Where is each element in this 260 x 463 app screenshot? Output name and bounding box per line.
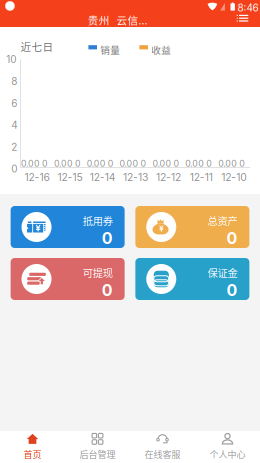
staticText: 云信... [116,12,147,27]
staticText: 0 [206,158,212,169]
staticText: 0.00 [54,158,73,169]
button[interactable]: 首页 [0,431,65,463]
staticText: 12-10 [221,171,247,184]
button[interactable]: 在线客服 [130,431,195,463]
staticText: 12-15 [57,171,82,184]
staticText: 12-16 [24,171,49,184]
staticText: 0 [102,229,113,248]
staticText: 0 [227,281,238,300]
staticText: 总资产 [208,213,238,228]
staticText: 2 [11,141,17,153]
staticText: 0 [239,158,245,169]
staticText: 0.00 [120,158,139,169]
button[interactable]: 抵用券 [11,206,125,248]
staticText: 0 [75,158,81,169]
staticText: 12-14 [90,171,116,184]
staticText: 个人中心 [209,447,245,461]
staticText: 0 [42,158,48,169]
staticText: 8 [11,75,17,87]
button[interactable]: Menu [232,10,252,26]
staticText: 6 [11,97,17,109]
staticText: 12-13 [123,171,148,184]
staticText: 8:46 [237,2,258,14]
staticText: 近七日 [21,39,54,54]
staticText: 收益 [151,43,171,56]
button[interactable]: 可提现 [11,258,125,300]
staticText: 在线客服 [144,447,180,461]
staticText: 12-12 [156,171,181,184]
button[interactable]: 后台管理 [65,431,130,463]
staticText: 0 [227,229,238,248]
button[interactable]: 保证金 [135,258,249,300]
staticText: 10 [6,53,16,65]
staticText: 0.00 [218,158,237,169]
staticText: 保证金 [208,265,238,280]
staticText: 首页 [23,447,41,461]
staticText: 4 [11,119,17,131]
staticText: 0 [173,158,179,169]
staticText: 销量 [100,43,120,56]
staticText: 0 [102,281,113,300]
button[interactable]: 总资产 [135,206,249,248]
staticText: 0.00 [185,158,204,169]
staticText: 抵用券 [83,213,113,228]
staticText: 0 [11,163,17,175]
staticText: 0.00 [87,158,106,169]
staticText: 12-11 [190,171,213,184]
staticText: 可提现 [83,265,113,280]
staticText: 0 [141,158,147,169]
staticText: 0 [108,158,114,169]
button[interactable]: 个人中心 [195,431,260,463]
staticText: 0.00 [152,158,171,169]
staticText: 0.00 [21,158,40,169]
staticText: 后台管理 [79,447,115,461]
staticText: 贵州 [88,12,110,27]
